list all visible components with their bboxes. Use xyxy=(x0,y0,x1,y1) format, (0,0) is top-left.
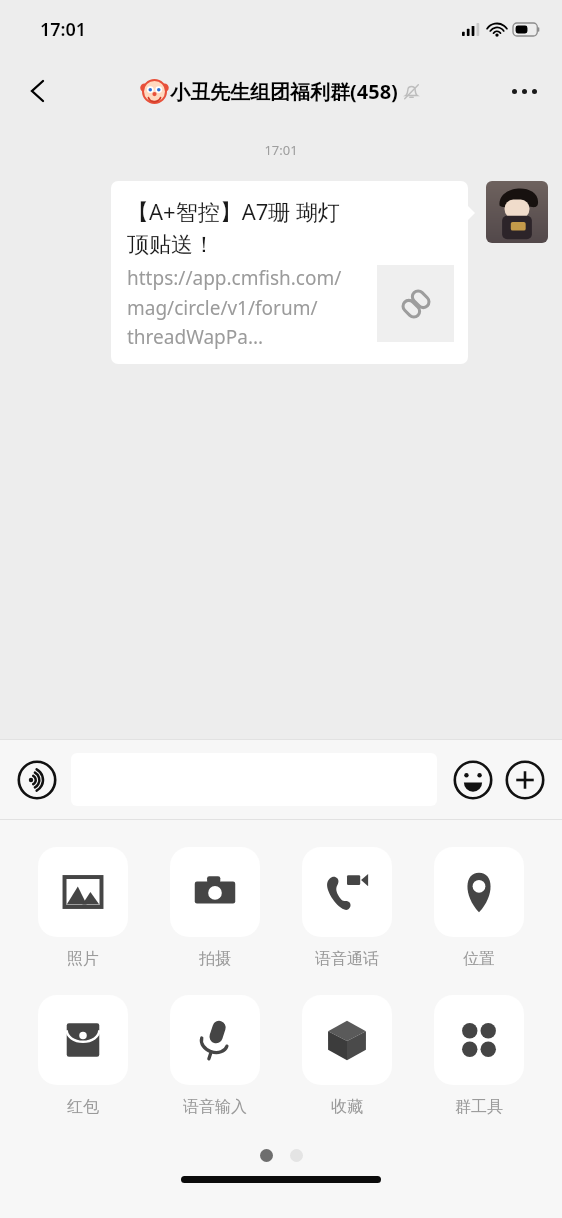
staticText: 17:01 xyxy=(0,141,562,159)
staticText: https://app.cmfish.com/mag/circle/v1/for… xyxy=(127,265,367,349)
staticText: 语音输入 xyxy=(183,1097,247,1117)
staticText: 拍摄 xyxy=(199,949,231,969)
button[interactable]: More functions xyxy=(503,758,547,802)
staticText: 红包 xyxy=(67,1097,99,1117)
staticText: 位置 xyxy=(463,949,495,969)
staticText: 小丑先生组团福利群(458) xyxy=(170,78,398,105)
button[interactable]: Emoji xyxy=(451,758,495,802)
button[interactable]: 拍摄 xyxy=(170,847,260,969)
button[interactable]: 语音输入 xyxy=(170,995,260,1117)
staticText: 【A+智控】A7珊 瑚灯 顶贴送！ xyxy=(127,196,341,258)
button[interactable]: Back xyxy=(14,68,60,114)
button[interactable]: 群工具 xyxy=(434,995,524,1117)
button[interactable]: 【A+智控】A7珊 瑚灯 顶贴送！ xyxy=(111,181,468,364)
button[interactable]: 照片 xyxy=(38,847,128,969)
button[interactable]: Voice message xyxy=(15,758,59,802)
staticText: 17:01 xyxy=(40,17,87,42)
button[interactable]: 红包 xyxy=(38,995,128,1117)
button[interactable]: 收藏 xyxy=(302,995,392,1117)
button[interactable]: More options xyxy=(500,67,548,115)
staticText: 语音通话 xyxy=(315,949,379,969)
staticText: 收藏 xyxy=(331,1097,363,1117)
staticText: 群工具 xyxy=(455,1097,503,1117)
button[interactable]: 语音通话 xyxy=(302,847,392,969)
staticText: 照片 xyxy=(67,949,99,969)
button[interactable]: Avatar xyxy=(486,181,548,243)
button[interactable]: 位置 xyxy=(434,847,524,969)
